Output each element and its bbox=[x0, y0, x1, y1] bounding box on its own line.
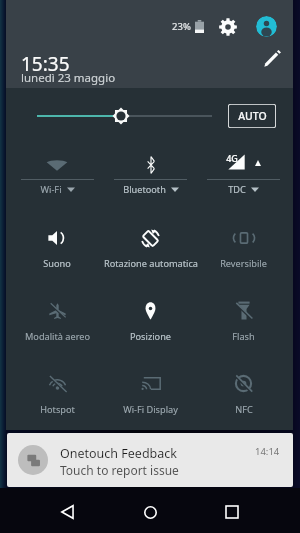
staticText: 14:14 bbox=[255, 445, 280, 458]
button[interactable]: Home bbox=[136, 498, 164, 526]
staticText: Flash bbox=[232, 330, 255, 343]
button[interactable]: Back bbox=[54, 498, 82, 526]
staticText: Wi-Fi bbox=[40, 183, 62, 196]
button[interactable]: 4G bbox=[197, 128, 290, 201]
button[interactable]: Modalità aereo bbox=[10, 274, 104, 347]
staticText: 23% bbox=[172, 20, 191, 33]
staticText: Touch to report issue bbox=[60, 462, 179, 478]
button[interactable]: Reversibile bbox=[197, 201, 290, 274]
staticText: Wi-Fi Display bbox=[123, 403, 178, 416]
button[interactable]: Hotspot bbox=[10, 347, 104, 420]
staticText: TDC bbox=[228, 183, 246, 196]
button[interactable]: Posizione bbox=[104, 274, 197, 347]
button[interactable]: Wi-Fi bbox=[10, 128, 104, 201]
staticText: Reversibile bbox=[220, 257, 267, 270]
button[interactable]: Recents bbox=[218, 498, 246, 526]
button[interactable]: Brightness bbox=[26, 104, 224, 128]
staticText: Modalità aereo bbox=[25, 330, 90, 343]
button[interactable]: Suono bbox=[10, 201, 104, 274]
button[interactable]: Account bbox=[256, 16, 277, 37]
staticText: Rotazione automatica bbox=[104, 257, 198, 270]
staticText: AUTO bbox=[238, 109, 267, 123]
staticText: Posizione bbox=[130, 330, 171, 343]
button[interactable]: Rotazione automatica bbox=[104, 201, 197, 274]
staticText: Hotspot bbox=[40, 403, 75, 416]
staticText: Onetouch Feedback bbox=[60, 445, 177, 462]
staticText: lunedì 23 maggio bbox=[21, 70, 116, 86]
button[interactable]: Onetouch Feedback bbox=[7, 433, 293, 487]
staticText: 4G bbox=[226, 152, 238, 164]
staticText: Suono bbox=[43, 257, 71, 270]
button[interactable]: AUTO bbox=[228, 104, 276, 128]
button[interactable]: Flash bbox=[197, 274, 290, 347]
staticText: NFC bbox=[235, 403, 253, 416]
button[interactable]: Edit bbox=[258, 44, 286, 72]
staticText: 15:35 bbox=[21, 51, 70, 77]
button[interactable]: Bluetooth bbox=[104, 128, 197, 201]
staticText: Bluetooth bbox=[123, 183, 166, 196]
button[interactable]: NFC bbox=[197, 347, 290, 420]
button[interactable]: Settings bbox=[216, 15, 239, 38]
button[interactable]: Wi-Fi Display bbox=[104, 347, 197, 420]
